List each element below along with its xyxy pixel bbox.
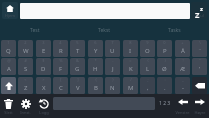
staticText: 8 [129,40,132,45]
button[interactable]: Tekst [69,23,139,37]
staticText: M [128,84,134,92]
button[interactable]: 3 [36,40,51,57]
staticText: V [76,84,80,92]
staticText: \ [199,40,201,45]
button[interactable]: [ [53,77,68,94]
staticText: T [76,47,80,55]
staticText: D [41,65,46,73]
staticText: Skjul [195,13,204,18]
staticText: R [59,47,63,55]
button[interactable]: Move left [175,95,190,118]
button[interactable]: > [36,77,51,94]
button[interactable]: 7 [105,40,120,57]
button[interactable]: & [70,58,85,75]
button[interactable]: 0 [157,40,172,57]
staticText: Tekst [98,27,111,34]
button[interactable]: 2 [18,40,33,57]
staticText: 5 [76,40,79,45]
button[interactable]: Delete [1,95,16,118]
staticText: [ [60,77,62,82]
staticText: 1 [7,40,10,45]
staticText: Innst. [20,110,31,115]
staticText: 1 2 3 [159,100,171,107]
button[interactable]: 1 [1,40,16,57]
button[interactable]: Settings [18,95,33,118]
button[interactable]: } [105,77,120,94]
staticText: Q [6,47,11,55]
button[interactable]: " [192,58,207,75]
button[interactable]: Test [0,23,69,37]
staticText: I [129,47,132,55]
staticText: U [110,47,115,55]
button[interactable]: @ [1,58,16,75]
button[interactable]: * [88,58,103,75]
staticText: Y [94,47,98,55]
button[interactable]: { [88,77,103,94]
staticText: F [59,65,63,73]
staticText: 3 [42,40,45,45]
staticText: @ [7,58,11,63]
staticText: z [200,5,203,13]
staticText: N [110,84,115,92]
button[interactable]: 4 [53,40,68,57]
staticText: S [24,65,28,73]
button[interactable]: / [123,77,138,94]
staticText: P [163,47,167,55]
button[interactable]: 5 [70,40,85,57]
staticText: Slett [4,110,13,115]
staticText: E [42,47,46,55]
button[interactable]: 6 [88,40,103,57]
staticText: 9 [146,40,149,45]
staticText: L [146,65,150,73]
button[interactable]: Sleep [191,2,207,19]
button[interactable]: ) [157,58,172,75]
staticText: # [24,58,27,63]
button[interactable]: _ [175,77,190,94]
staticText: Venstre [175,110,190,115]
button[interactable]: + [175,40,190,57]
button[interactable]: ! [175,58,190,75]
button[interactable]: Backspace [192,77,207,94]
button[interactable]: History [36,95,51,118]
staticText: H [93,65,98,73]
button[interactable]: 1 2 3 [157,95,172,118]
staticText: 4 [59,40,62,45]
button[interactable]: \ [192,40,207,57]
staticText: 7 [111,40,114,45]
button[interactable]: 8 [123,40,138,57]
button[interactable]: % [53,58,68,75]
button[interactable]: Shift [1,77,16,94]
button[interactable]: $ [36,58,51,75]
staticText: Z [24,84,28,92]
button[interactable]: = [123,58,138,75]
staticText: 2 [24,40,27,45]
button[interactable]: - [105,58,120,75]
button[interactable]: : [157,77,172,94]
staticText: Høyre [194,110,206,115]
button[interactable]: Home [2,2,18,19]
button[interactable]: # [18,58,33,75]
button[interactable]: ( [140,58,155,75]
button[interactable]: 9 [140,40,155,57]
button[interactable]: Tasks [139,23,209,37]
staticText: Tasks [168,27,181,34]
button[interactable]: < [18,77,33,94]
staticText: ' [199,65,201,73]
staticText: Test [30,27,40,34]
staticText: * [94,58,97,63]
staticText: W [23,47,29,55]
button[interactable]: ; [140,77,155,94]
button[interactable]: Move right [192,95,207,118]
staticText: B [94,84,98,92]
button[interactable]: ] [70,77,85,94]
